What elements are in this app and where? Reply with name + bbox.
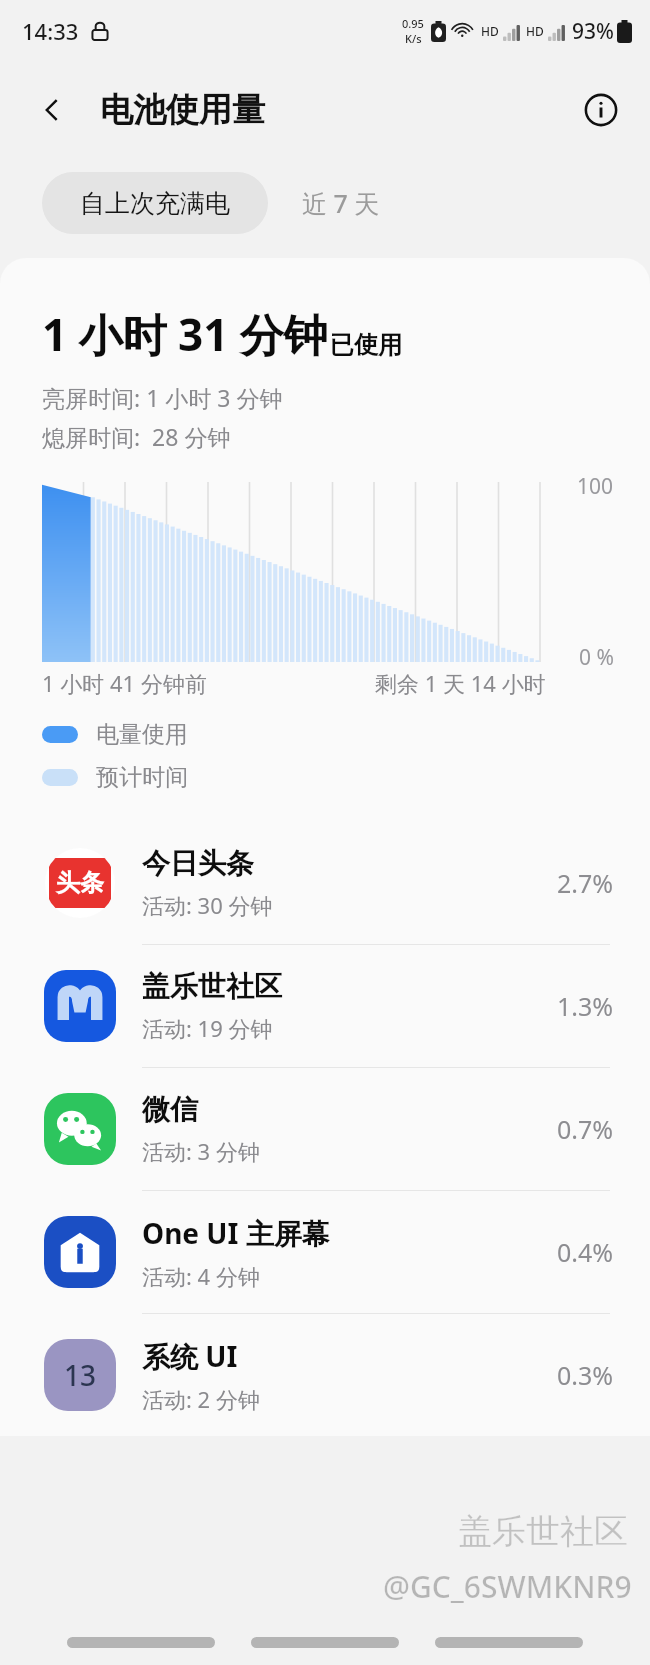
staticText: 近 7 天: [302, 186, 380, 220]
staticText: 活动: 19 分钟: [142, 1013, 273, 1043]
button[interactable]: 盖乐世社区: [0, 945, 650, 1067]
staticText: @GC_6SWMKNR9: [383, 1566, 632, 1607]
staticText: 活动: 4 分钟: [142, 1261, 260, 1291]
staticText: 自上次充满电: [80, 188, 230, 219]
staticText: 14:33: [22, 16, 79, 46]
staticText: 预计时间: [96, 763, 188, 792]
staticText: 1 小时 31 分钟: [42, 304, 328, 364]
staticText: 已使用: [330, 330, 402, 360]
staticText: 活动: 30 分钟: [142, 890, 273, 920]
button[interactable]: 自上次充满电: [42, 172, 268, 234]
staticText: 系统 UI: [142, 1337, 238, 1375]
staticText: 13: [64, 1356, 97, 1394]
staticText: 93%: [572, 17, 614, 46]
staticText: 活动: 2 分钟: [142, 1384, 260, 1414]
staticText: 今日头条: [142, 846, 254, 881]
button[interactable]: Information: [574, 83, 628, 137]
staticText: 头条: [56, 868, 104, 898]
staticText: 剩余 1 天 14 小时: [375, 668, 546, 698]
staticText: 0.4%: [557, 1235, 614, 1269]
staticText: 盖乐世社区: [142, 969, 282, 1004]
button[interactable]: Back: [435, 1637, 583, 1648]
staticText: 0.7%: [557, 1112, 614, 1146]
staticText: 0 %: [579, 643, 614, 672]
staticText: 2.7%: [557, 866, 614, 900]
button[interactable]: 微信: [0, 1068, 650, 1190]
staticText: HD: [481, 23, 499, 39]
button[interactable]: Home: [251, 1637, 399, 1648]
button[interactable]: Back: [26, 84, 78, 136]
staticText: 1.3%: [557, 989, 614, 1023]
staticText: 电量使用: [96, 720, 188, 749]
button[interactable]: 13: [0, 1314, 650, 1436]
staticText: 微信: [142, 1092, 198, 1127]
button[interactable]: 近 7 天: [268, 172, 414, 234]
button[interactable]: 头条: [0, 822, 650, 944]
button[interactable]: Recents: [67, 1637, 215, 1648]
staticText: One UI 主屏幕: [142, 1214, 330, 1252]
staticText: 活动: 3 分钟: [142, 1136, 260, 1166]
staticText: 亮屏时间: 1 小时 3 分钟: [42, 382, 283, 413]
staticText: 0.95: [402, 16, 424, 31]
staticText: 1 小时 41 分钟前: [42, 668, 207, 698]
staticText: 盖乐世社区: [458, 1510, 628, 1553]
staticText: 0.3%: [557, 1358, 614, 1392]
staticText: K/s: [405, 31, 422, 46]
button[interactable]: One UI 主屏幕: [0, 1191, 650, 1313]
staticText: 熄屏时间: 28 分钟: [42, 421, 231, 452]
staticText: 电池使用量: [100, 89, 265, 131]
staticText: 100: [577, 472, 614, 501]
staticText: HD: [526, 23, 544, 39]
